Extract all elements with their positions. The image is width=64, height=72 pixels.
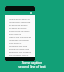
staticText: excepteur sint occaecat cupid	[9, 51, 32, 54]
staticText: voluptate velit esse cillum	[9, 45, 32, 48]
staticText: aliqua enim ad minim veniam	[9, 30, 32, 33]
staticText: Lorem ipsum dolor sit amet con	[9, 18, 32, 21]
staticText: consectetur adipiscing elit sed	[9, 21, 32, 24]
staticText: laboris nisi ut aliquip ex ea	[9, 36, 32, 39]
staticText: second line of text	[0, 65, 64, 69]
staticText: ut labore et dolore magna	[9, 27, 32, 30]
staticText: dolore eu fugiat nulla pariatur	[9, 48, 32, 51]
staticText: irure dolor in reprehenderit in	[9, 42, 32, 45]
staticText: commodo consequat duis aute	[9, 39, 32, 42]
staticText: do eiusmod tempor incididunt	[9, 24, 32, 27]
staticText: Some caption	[0, 61, 64, 65]
staticText: non proident sunt in culpa qui	[9, 54, 32, 57]
staticText: quis nostrud exercitation ullam	[9, 33, 32, 36]
